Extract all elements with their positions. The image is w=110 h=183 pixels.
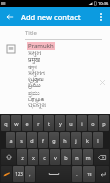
staticText: Pramukh	[28, 42, 54, 50]
button[interactable]: ପ୍ରମୁଖ	[27, 102, 48, 108]
button[interactable]: t	[44, 115, 54, 131]
button[interactable]: d	[27, 132, 37, 148]
button[interactable]: ప్రము	[27, 82, 42, 90]
staticText: 10:36	[98, 1, 109, 6]
button[interactable]: ப்ரமுக	[27, 96, 46, 102]
staticText: ପ୍ରମୁଖ	[28, 102, 47, 108]
button[interactable]: h	[60, 132, 70, 148]
button[interactable]: l	[93, 132, 103, 148]
button[interactable]: প্রমুখ	[27, 64, 38, 70]
button[interactable]: o	[88, 115, 98, 131]
staticText: प्रमुख	[28, 56, 40, 64]
staticText: o	[91, 120, 95, 127]
button[interactable]: प्रमुख	[27, 56, 41, 64]
button[interactable]: m	[83, 149, 93, 165]
button[interactable]: .	[72, 166, 82, 182]
staticText: f	[42, 137, 44, 144]
button[interactable]: q	[1, 115, 10, 131]
button[interactable]: Close	[98, 78, 107, 87]
button[interactable]: k	[82, 132, 92, 148]
button[interactable]: Enter	[96, 166, 109, 182]
button[interactable]: પ્રમુખત	[27, 70, 47, 76]
button[interactable]: f	[38, 132, 48, 148]
staticText: t	[48, 120, 50, 127]
staticText: h	[63, 137, 67, 144]
staticText: ಪ್ರಮು	[28, 90, 40, 96]
button[interactable]: a	[6, 132, 15, 148]
button[interactable]: g	[49, 132, 59, 148]
button[interactable]: c	[39, 149, 49, 165]
button[interactable]: s	[16, 132, 26, 148]
staticText: m	[85, 154, 91, 161]
button[interactable]: y	[55, 115, 65, 131]
button[interactable]: b	[61, 149, 71, 165]
staticText: i	[81, 120, 83, 127]
button[interactable]: 123	[13, 166, 24, 182]
staticText: ப்ரமுக	[28, 96, 45, 102]
staticText: પ્રમુખ	[28, 50, 42, 56]
button[interactable]: x	[28, 149, 38, 165]
button[interactable]: TE	[83, 166, 95, 182]
button[interactable]: Backspace	[94, 149, 109, 165]
staticText: ,	[29, 171, 31, 178]
button[interactable]: i	[77, 115, 87, 131]
button[interactable]: v	[50, 149, 60, 165]
staticText: പ്രമുഖ	[28, 76, 44, 82]
staticText: y	[59, 120, 62, 127]
button[interactable]: e	[22, 115, 32, 131]
staticText: u	[69, 120, 73, 127]
button[interactable]: Navigate up	[0, 7, 19, 26]
button[interactable]: Pramukh	[27, 42, 55, 50]
staticText: 123	[15, 171, 23, 177]
button[interactable]: j	[71, 132, 81, 148]
button[interactable]: പ്രമുഖ	[27, 76, 45, 82]
button[interactable]: r	[33, 115, 43, 131]
staticText: પ્રમુખત	[28, 70, 46, 76]
staticText: s	[20, 137, 23, 144]
button[interactable]: More options	[91, 7, 110, 26]
staticText: j	[75, 137, 77, 144]
staticText: l	[97, 137, 99, 144]
staticText: ప్రము	[28, 82, 41, 90]
staticText: w	[14, 120, 19, 127]
button[interactable]: Switch keyboard	[6, 44, 15, 53]
staticText: a	[9, 137, 13, 144]
staticText: x	[32, 154, 35, 161]
staticText: q	[4, 120, 8, 127]
button[interactable]: w	[11, 115, 21, 131]
button[interactable]: Input method	[1, 166, 12, 182]
button[interactable]: પ્રમુખ	[27, 50, 43, 56]
button[interactable]: ,	[25, 166, 35, 182]
button[interactable]: p	[99, 115, 109, 131]
button[interactable]: Shift	[1, 149, 16, 165]
button[interactable]: n	[72, 149, 82, 165]
staticText: k	[86, 137, 89, 144]
staticText: c	[43, 154, 46, 161]
staticText: প্রমুখ	[28, 64, 37, 70]
staticText: b	[64, 154, 68, 161]
button[interactable]: Space	[36, 166, 71, 182]
staticText: e	[25, 120, 29, 127]
button[interactable]: u	[66, 115, 76, 131]
staticText: r	[37, 120, 40, 127]
staticText: g	[52, 137, 56, 144]
button[interactable]: ಪ್ರಮು	[27, 90, 41, 96]
staticText: TE	[87, 172, 92, 177]
staticText: z	[21, 154, 24, 161]
staticText: .	[76, 171, 78, 178]
button[interactable]: z	[17, 149, 27, 165]
staticText: d	[30, 137, 34, 144]
staticText: n	[75, 154, 79, 161]
staticText: Title	[25, 29, 37, 37]
staticText: Add new contact	[21, 12, 81, 22]
staticText: p	[102, 120, 106, 127]
staticText: v	[54, 154, 57, 161]
